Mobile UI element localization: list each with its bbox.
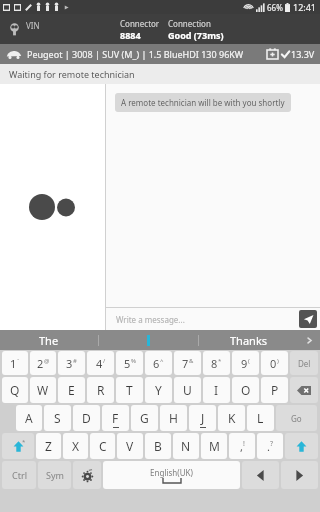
button[interactable]: B xyxy=(145,433,171,459)
button[interactable]: Go xyxy=(276,405,317,431)
button[interactable]: P xyxy=(261,377,288,403)
button[interactable]: English(UK) xyxy=(103,461,240,489)
staticText: D xyxy=(82,410,91,426)
button[interactable]: More suggestions xyxy=(298,330,320,350)
button[interactable]: Right xyxy=(281,461,318,489)
staticText: E xyxy=(68,382,75,398)
button[interactable]: 5 xyxy=(116,351,143,375)
staticText: % xyxy=(131,357,136,365)
button[interactable]: C xyxy=(90,433,115,459)
staticText: Go xyxy=(291,413,302,424)
button[interactable]: H xyxy=(160,405,187,431)
button[interactable]: X xyxy=(63,433,88,459)
staticText: T xyxy=(126,382,133,398)
button[interactable]: K xyxy=(218,405,245,431)
button[interactable]: Z xyxy=(36,433,61,459)
staticText: 4 xyxy=(96,356,103,371)
staticText: The xyxy=(39,333,59,348)
staticText: A remote technician will be with you sho… xyxy=(121,97,285,108)
button[interactable]: Y xyxy=(145,377,172,403)
staticText: Z xyxy=(45,438,52,454)
staticText: * xyxy=(218,357,222,365)
button[interactable]: S xyxy=(44,405,71,431)
button[interactable]: Q xyxy=(2,377,28,403)
button[interactable]: W xyxy=(30,377,56,403)
button[interactable]: Sym xyxy=(38,461,71,489)
staticText: 66% xyxy=(267,2,283,13)
button[interactable]: 4 xyxy=(87,351,114,375)
button[interactable]: Shift xyxy=(2,433,34,459)
button[interactable]: J xyxy=(189,405,216,431)
button[interactable]: N xyxy=(173,433,199,459)
staticText: Sym xyxy=(46,469,64,481)
button[interactable]: 3 xyxy=(58,351,85,375)
button[interactable]: Send xyxy=(299,310,317,328)
staticText: X xyxy=(72,438,80,454)
staticText: A xyxy=(25,410,33,426)
button[interactable]: U xyxy=(174,377,201,403)
staticText: ? xyxy=(270,439,274,449)
button[interactable]: V xyxy=(117,433,143,459)
staticText: S xyxy=(54,410,61,426)
button[interactable]: F xyxy=(102,405,129,431)
button[interactable]: T xyxy=(116,377,143,403)
staticText: / xyxy=(103,357,106,365)
staticText: M xyxy=(209,438,220,454)
staticText: 9 xyxy=(241,356,248,371)
staticText: 3 xyxy=(66,356,73,371)
staticText: B xyxy=(154,438,162,454)
button[interactable]: G xyxy=(131,405,158,431)
button[interactable]: E xyxy=(58,377,85,403)
staticText: ! xyxy=(243,439,245,449)
button[interactable]: . xyxy=(257,433,283,459)
staticText: & xyxy=(189,357,194,365)
staticText: Connection xyxy=(168,18,211,29)
staticText: English(UK) xyxy=(150,467,193,478)
button[interactable]: 9 xyxy=(232,351,259,375)
button[interactable]: Ctrl xyxy=(2,461,36,489)
button[interactable]: , xyxy=(229,433,255,459)
button[interactable]: 2 xyxy=(30,351,56,375)
staticText: # xyxy=(73,357,77,365)
button[interactable]: 0 xyxy=(261,351,288,375)
button[interactable]: M xyxy=(201,433,227,459)
staticText: @ xyxy=(44,357,50,365)
button[interactable]: Left xyxy=(242,461,279,489)
button[interactable]: D xyxy=(73,405,100,431)
button[interactable]: Del xyxy=(290,351,318,375)
staticText: 7 xyxy=(182,356,189,371)
button[interactable] xyxy=(99,330,198,350)
staticText: C xyxy=(99,438,107,454)
staticText: * xyxy=(22,438,26,446)
button[interactable]: I xyxy=(203,377,230,403)
staticText: L xyxy=(257,410,264,426)
button[interactable]: R xyxy=(87,377,114,403)
button[interactable]: 6 xyxy=(145,351,172,375)
button[interactable]: Backspace xyxy=(290,377,318,403)
staticText: 5 xyxy=(124,356,131,371)
button[interactable]: Settings xyxy=(73,461,101,489)
staticText: ˘ xyxy=(17,357,20,365)
button[interactable]: Thanks xyxy=(199,330,298,350)
staticText: ) xyxy=(277,357,279,365)
staticText: W xyxy=(37,382,49,398)
staticText: H xyxy=(169,410,178,426)
button[interactable]: The xyxy=(0,330,98,350)
button[interactable]: 1 xyxy=(2,351,28,375)
staticText: I xyxy=(214,382,219,398)
button[interactable]: A xyxy=(16,405,42,431)
button[interactable]: 8 xyxy=(203,351,230,375)
staticText: Ctrl xyxy=(12,469,27,481)
button[interactable]: Write a message... xyxy=(106,308,299,330)
button[interactable]: 7 xyxy=(174,351,201,375)
staticText: G xyxy=(140,410,149,426)
staticText: N xyxy=(181,438,191,454)
staticText: ( xyxy=(248,357,250,365)
button[interactable]: Shift xyxy=(285,433,318,459)
staticText: Good (73ms) xyxy=(168,29,224,41)
staticText: Q xyxy=(10,382,20,398)
button[interactable]: L xyxy=(247,405,274,431)
button[interactable]: O xyxy=(232,377,259,403)
staticText: V xyxy=(126,438,134,454)
staticText: F xyxy=(112,410,119,426)
